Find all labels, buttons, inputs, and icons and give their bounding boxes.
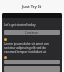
button[interactable]: Continue [4,30,60,35]
button[interactable] [4,60,60,64]
staticText: Let's get started today [4,23,36,27]
staticText: Lorem ipsum dolor sit amet con [4,42,49,46]
other: Badge [4,56,7,59]
staticText: Continue [25,31,39,35]
staticText: sectetur adipiscing elit sed do [4,46,46,50]
staticText: Just Try It [22,4,42,9]
staticText: eiusmod tempor incididunt ut [4,50,47,54]
other: Badge [4,38,7,41]
